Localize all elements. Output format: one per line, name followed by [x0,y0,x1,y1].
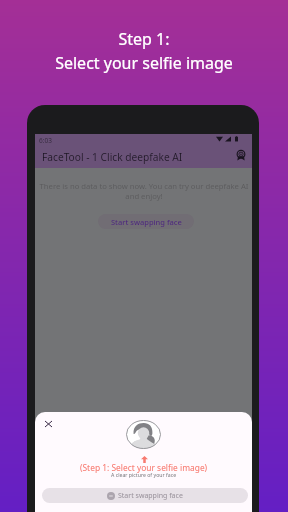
staticText: (Step 1: Select your selfie image) [80,462,208,473]
staticText: A clear picture of your face [111,471,177,478]
button[interactable]: Close [39,415,57,433]
staticText: Step 1: [118,28,170,50]
staticText: Start swapping face [118,491,183,501]
button[interactable]: Start swapping face [98,214,194,229]
staticText: 6:03 [39,136,52,145]
button[interactable]: Premium [231,145,251,165]
staticText: Select your selfie image [55,52,233,74]
button[interactable]: Start swapping face [42,488,248,503]
staticText: FaceTool - 1 Click deepfake AI [42,150,183,164]
staticText: Start swapping face [111,217,182,227]
staticText: There is no data to show now. You can tr… [38,181,250,201]
